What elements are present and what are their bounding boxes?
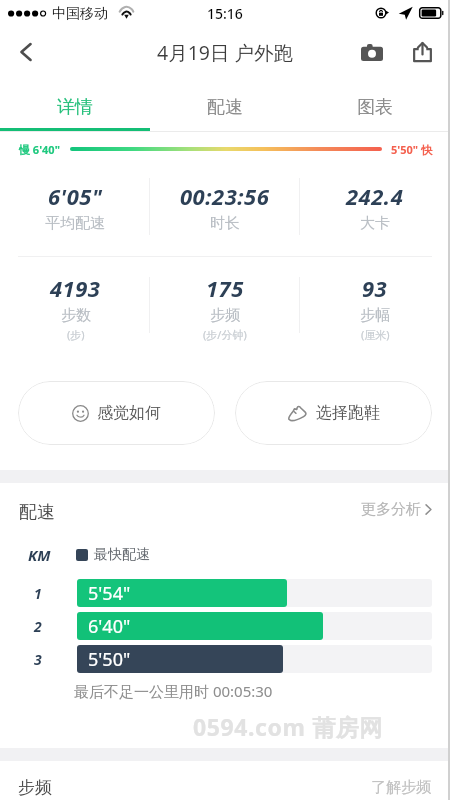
staticText: 感觉如何 bbox=[97, 403, 161, 423]
staticText: 5'50" bbox=[88, 647, 131, 672]
staticText: 4月19日 户外跑 bbox=[157, 39, 294, 66]
staticText: 242.4 bbox=[346, 181, 404, 211]
staticText: 中国移动 bbox=[52, 5, 108, 23]
staticText: 最快配速 bbox=[94, 546, 150, 564]
staticText: (步/分钟) bbox=[203, 327, 247, 342]
staticText: (厘米) bbox=[361, 327, 390, 342]
staticText: 时长 bbox=[210, 214, 240, 233]
staticText: (步) bbox=[67, 327, 85, 342]
staticText: 了解步频 bbox=[371, 778, 431, 797]
staticText: 6'05" bbox=[48, 181, 103, 211]
staticText: 175 bbox=[206, 273, 244, 303]
staticText: 详情 bbox=[57, 96, 93, 119]
button[interactable]: 图表 bbox=[300, 81, 450, 133]
staticText: 1 bbox=[34, 584, 42, 603]
staticText: 93 bbox=[362, 273, 388, 303]
staticText: 配速 bbox=[207, 96, 243, 119]
staticText: 图表 bbox=[357, 96, 393, 119]
staticText: 步频 bbox=[18, 777, 52, 798]
staticText: 最后不足一公里用时 00:05:30 bbox=[74, 681, 273, 701]
button[interactable]: Camera bbox=[352, 32, 392, 72]
staticText: 步频 bbox=[210, 306, 240, 325]
staticText: 配速 bbox=[19, 501, 55, 524]
staticText: 4193 bbox=[50, 273, 101, 303]
staticText: 慢 6'40" bbox=[19, 142, 60, 157]
staticText: 大卡 bbox=[360, 214, 390, 233]
staticText: 步幅 bbox=[360, 306, 390, 325]
staticText: 选择跑鞋 bbox=[316, 403, 380, 423]
button[interactable]: 详情 bbox=[0, 81, 150, 133]
button[interactable]: 感觉如何 bbox=[18, 381, 215, 445]
staticText: KM bbox=[28, 545, 51, 565]
staticText: 5'54" bbox=[88, 581, 131, 606]
staticText: 步数 bbox=[61, 306, 91, 325]
staticText: 平均配速 bbox=[45, 214, 105, 233]
button[interactable]: 了解步频 bbox=[371, 778, 431, 797]
staticText: 更多分析 bbox=[361, 500, 421, 519]
staticText: 2 bbox=[34, 617, 42, 636]
button[interactable]: Back bbox=[0, 27, 52, 77]
button[interactable]: 选择跑鞋 bbox=[235, 381, 432, 445]
staticText: 0594.com 莆房网 bbox=[193, 711, 383, 742]
staticText: 3 bbox=[34, 650, 42, 669]
button[interactable]: Share bbox=[402, 32, 442, 72]
button[interactable]: 配速 bbox=[150, 81, 300, 133]
staticText: 15:16 bbox=[207, 4, 243, 23]
staticText: 5'50" 快 bbox=[391, 142, 432, 157]
staticText: 6'40" bbox=[88, 614, 131, 639]
button[interactable]: 更多分析 bbox=[359, 496, 434, 523]
staticText: 00:23:56 bbox=[180, 181, 270, 211]
